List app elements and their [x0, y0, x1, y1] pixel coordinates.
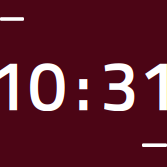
staticText: : [75, 32, 92, 137]
staticText: 10 [0, 32, 67, 137]
staticText: 31 [100, 32, 167, 137]
